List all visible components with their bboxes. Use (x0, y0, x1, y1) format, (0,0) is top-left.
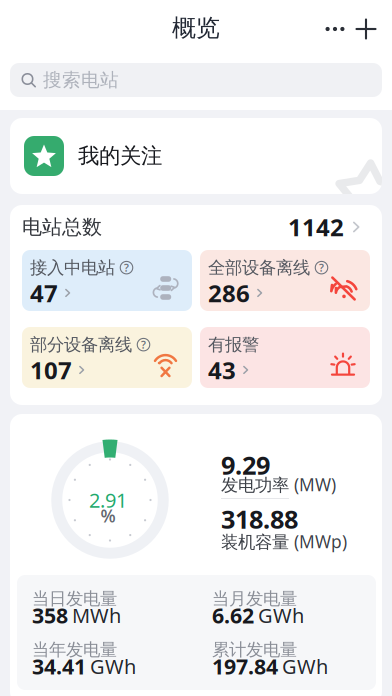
staticText: 有报警 (208, 334, 259, 355)
staticText: 197.84 (212, 652, 278, 680)
staticText: 47 (30, 277, 58, 309)
staticText: 34.41 (32, 652, 86, 680)
staticText: 发电功率 (MW) (221, 473, 336, 496)
staticText: 搜索电站 (43, 68, 119, 91)
staticText: 43 (208, 354, 236, 386)
staticText: 接入中电站 (30, 257, 115, 278)
staticText: 我的关注 (78, 143, 162, 169)
staticText: MWh (72, 602, 121, 628)
staticText: % (100, 504, 115, 527)
staticText: 9.29 (221, 448, 270, 482)
staticText: 2.91 (89, 487, 127, 513)
button[interactable]: 部分设备离线 (22, 327, 192, 388)
button[interactable]: 电站总数 (10, 207, 382, 247)
staticText: 累计发电量 (212, 639, 297, 660)
staticText: 318.88 (221, 502, 298, 536)
staticText: 概览 (172, 13, 220, 43)
button[interactable]: Search stations (10, 63, 382, 97)
staticText: 1142 (288, 211, 344, 243)
staticText: 107 (30, 354, 72, 386)
staticText: GWh (90, 653, 136, 679)
staticText: 当月发电量 (212, 588, 297, 609)
staticText: 358 (32, 601, 68, 629)
button[interactable]: Add (351, 14, 381, 44)
staticText: 当年发电量 (32, 639, 117, 660)
staticText: GWh (282, 653, 328, 679)
staticText: ? (319, 261, 324, 275)
staticText: ? (141, 338, 146, 352)
staticText: GWh (258, 602, 304, 628)
button[interactable]: More (320, 14, 350, 44)
staticText: 电站总数 (22, 215, 102, 239)
staticText: 当日发电量 (32, 588, 117, 609)
staticText: ? (124, 261, 129, 275)
button[interactable]: 接入中电站 (22, 250, 192, 311)
staticText: 6.62 (212, 601, 254, 629)
button[interactable]: 有报警 (200, 327, 370, 388)
button[interactable]: 我的关注 (10, 118, 382, 194)
staticText: 部分设备离线 (30, 334, 132, 355)
staticText: 全部设备离线 (208, 257, 310, 278)
button[interactable]: 全部设备离线 (200, 250, 370, 311)
staticText: 286 (208, 277, 250, 309)
staticText: 装机容量 (MWp) (221, 530, 347, 553)
